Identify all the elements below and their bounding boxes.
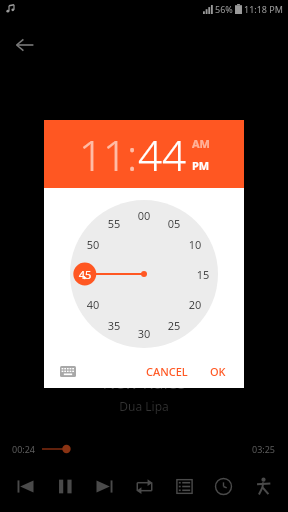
button[interactable]: Keyboard input	[56, 359, 80, 383]
button[interactable]: Next	[87, 469, 121, 503]
staticText: 10	[184, 237, 206, 252]
staticText: 40	[82, 297, 104, 312]
staticText: 00:24	[12, 443, 36, 455]
staticText: New Rules	[0, 371, 288, 394]
staticText: 45	[74, 267, 96, 282]
button[interactable]: Back	[8, 28, 42, 62]
button[interactable]: 44	[138, 126, 186, 183]
staticText: 15	[192, 267, 214, 282]
button[interactable]: PM	[192, 158, 210, 173]
staticText: 30	[133, 326, 155, 341]
staticText: 00	[133, 208, 155, 223]
button[interactable]: OK	[204, 360, 232, 383]
button[interactable]: 11	[79, 126, 127, 183]
button[interactable]: Playlist	[167, 469, 201, 503]
staticText: OK	[210, 364, 226, 379]
button[interactable]: 00	[70, 200, 218, 348]
staticText: :	[127, 126, 138, 183]
button[interactable]	[42, 442, 246, 456]
staticText: 35	[103, 318, 125, 333]
button[interactable]: Pause	[48, 469, 82, 503]
staticText: 03:25	[252, 443, 276, 455]
staticText: CANCEL	[146, 364, 188, 379]
staticText: Dua Lipa	[0, 398, 288, 414]
button[interactable]: Workout	[246, 469, 280, 503]
staticText: 55	[103, 216, 125, 231]
button[interactable]: Sleep timer	[206, 469, 240, 503]
button[interactable]: AM	[192, 136, 210, 151]
staticText: 20	[184, 297, 206, 312]
button[interactable]: Repeat	[127, 469, 161, 503]
button[interactable]: CANCEL	[140, 360, 194, 383]
button[interactable]: Previous	[8, 469, 42, 503]
staticText: 11:18 PM	[244, 3, 283, 15]
staticText: 25	[163, 318, 185, 333]
staticText: 05	[163, 216, 185, 231]
staticText: 56%	[215, 3, 233, 15]
staticText: 50	[82, 237, 104, 252]
